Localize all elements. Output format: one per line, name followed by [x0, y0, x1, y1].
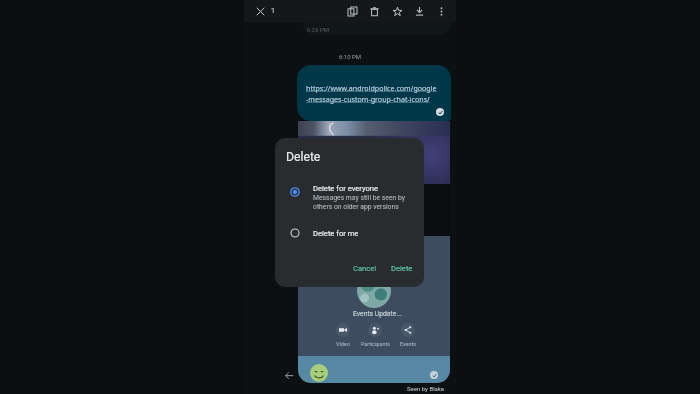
staticText: Events: [400, 341, 416, 347]
staticText: Events Update...: [353, 310, 402, 318]
button[interactable]: Delete for me: [275, 228, 424, 238]
staticText: Now you can identify group chats at a gl…: [306, 202, 389, 217]
staticText: Delete for everyone: [313, 184, 379, 193]
staticText: Delete for me: [313, 229, 359, 238]
button[interactable]: Video: [321, 323, 365, 347]
button[interactable]: Delete for everyone: [275, 184, 424, 211]
staticText: -messages-custom-group-chat-icons/: [306, 94, 430, 104]
button[interactable]: Participants: [353, 323, 397, 347]
button[interactable]: Close: [249, 0, 271, 22]
staticText: Participants: [361, 341, 390, 347]
button[interactable]: Star: [386, 0, 408, 22]
staticText: 6:26 PM: [307, 26, 330, 33]
staticText: Seen by Blake: [407, 385, 445, 392]
button[interactable]: More options: [430, 0, 452, 22]
button[interactable]: Copy: [341, 0, 363, 22]
button[interactable]: Cancel: [346, 260, 384, 277]
staticText: 1: [271, 7, 275, 15]
button[interactable]: Delete: [384, 260, 420, 277]
staticText: Cancel: [353, 264, 377, 273]
staticText: Delete: [391, 264, 413, 273]
button[interactable]: Events: [386, 323, 430, 347]
staticText: https://www.androidpolice.com/google: [306, 83, 437, 93]
staticText: Video: [336, 341, 350, 347]
button[interactable]: Delete: [363, 0, 385, 22]
staticText: Google Messages gets custo-...: [306, 191, 393, 198]
staticText: Delete: [286, 150, 321, 164]
staticText: 6:10 PM: [339, 53, 362, 60]
button[interactable]: Download: [408, 0, 430, 22]
button[interactable]: Reply: [282, 368, 296, 382]
staticText: Messages may still be seen by others on …: [313, 194, 406, 211]
button[interactable]: https://www.androidpolice.com/google: [297, 65, 451, 121]
